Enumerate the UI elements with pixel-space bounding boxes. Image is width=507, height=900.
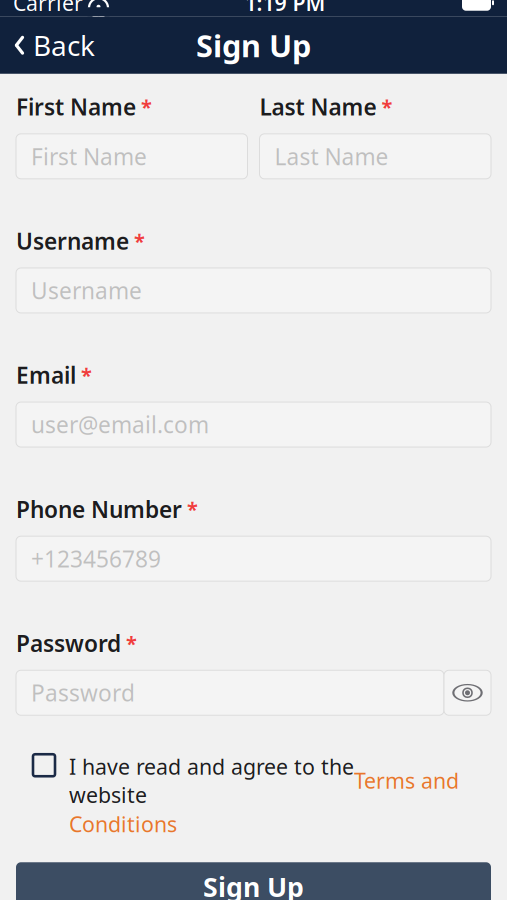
staticText: Password — [16, 628, 121, 658]
staticText: Terms and — [354, 766, 459, 795]
staticText: * — [381, 93, 392, 120]
staticText: Last Name — [259, 92, 376, 122]
staticText: Phone Number — [16, 494, 182, 524]
staticText: First Name — [16, 92, 136, 122]
staticText: Username — [16, 226, 129, 256]
button[interactable]: Back — [0, 17, 108, 74]
staticText: I have read and agree to the website — [69, 752, 354, 809]
staticText: Last Name — [274, 141, 388, 171]
staticText: * — [187, 496, 198, 522]
button[interactable]: Sign Up — [16, 862, 491, 900]
staticText: Sign Up — [203, 869, 304, 900]
staticText: user@email.com — [31, 409, 209, 440]
staticText: * — [81, 362, 92, 388]
staticText: 1:19 PM — [244, 0, 325, 17]
staticText: Sign Up — [196, 25, 311, 66]
staticText: +123456789 — [31, 544, 161, 574]
staticText: Conditions — [69, 810, 177, 838]
staticText: Password — [31, 678, 135, 708]
staticText: * — [126, 630, 137, 656]
staticText: Carrier — [13, 0, 83, 17]
button[interactable]: Show password — [444, 670, 491, 715]
staticText: Username — [31, 275, 142, 305]
staticText: * — [141, 93, 152, 120]
staticText: Back — [33, 27, 95, 64]
staticText: Email — [16, 360, 76, 390]
staticText: * — [134, 228, 145, 254]
staticText: First Name — [31, 141, 147, 171]
button[interactable]: I have read and agree to the website — [16, 752, 491, 838]
